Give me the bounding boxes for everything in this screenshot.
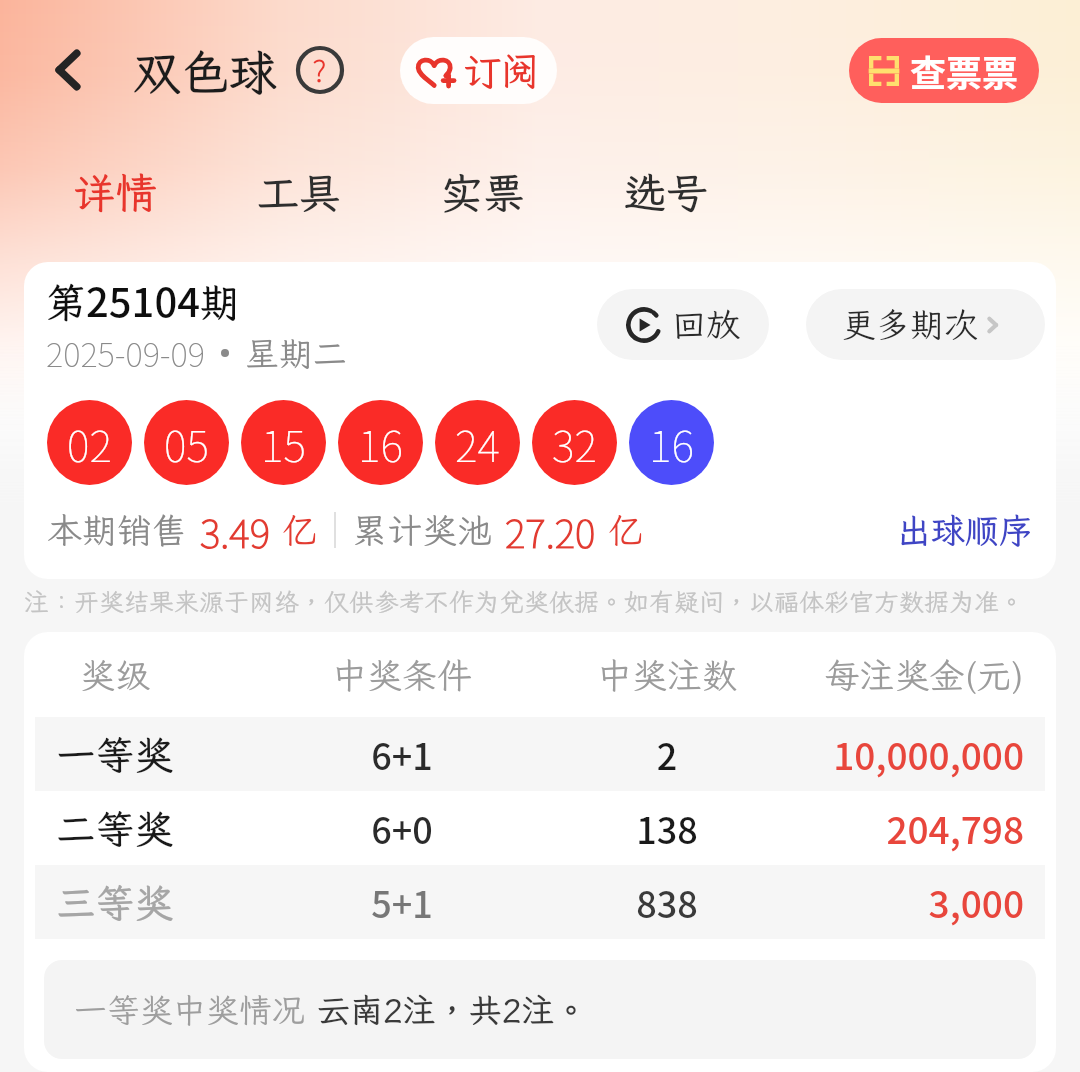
- staticText: 每注奖金(元): [824, 652, 1024, 698]
- staticText: 工具: [257, 165, 342, 220]
- button[interactable]: 订阅: [400, 37, 557, 104]
- staticText: 云南2注，共2注。: [317, 988, 588, 1031]
- button[interactable]: 工具: [239, 148, 359, 236]
- staticText: 更多期次: [842, 302, 978, 347]
- button[interactable]: 查票票: [849, 38, 1039, 103]
- staticText: 5+1: [262, 876, 542, 928]
- staticText: ?: [313, 47, 327, 90]
- staticText: 24: [455, 412, 500, 474]
- staticText: 204,798: [886, 801, 1024, 855]
- staticText: 10,000,000: [833, 727, 1024, 781]
- button[interactable]: 一等奖中奖情况: [44, 960, 1036, 1059]
- staticText: 双色球: [133, 40, 278, 103]
- staticText: 本期销售: [47, 507, 200, 553]
- button[interactable]: 三等奖: [24, 865, 1056, 939]
- staticText: 2025-09-09: [46, 329, 205, 377]
- staticText: 16: [649, 412, 694, 474]
- staticText: 实票: [441, 165, 526, 220]
- staticText: 05: [164, 412, 209, 474]
- button[interactable]: 选号: [606, 148, 726, 236]
- staticText: 订阅: [463, 46, 540, 96]
- staticText: 星期二: [245, 331, 347, 376]
- staticText: 累计奖池: [352, 507, 505, 553]
- button[interactable]: 二等奖: [24, 791, 1056, 865]
- staticText: 亿: [270, 507, 318, 553]
- staticText: 3.49: [200, 503, 270, 557]
- staticText: 二等奖: [24, 803, 255, 854]
- staticText: 三等奖: [24, 877, 255, 928]
- staticText: 选号: [624, 165, 709, 220]
- staticText: 注：开奖结果来源于网络，仅供参考不作为兑奖依据。如有疑问，以福体彩官方数据为准。: [24, 585, 1025, 618]
- staticText: 一等奖: [24, 729, 255, 780]
- button[interactable]: 一等奖: [24, 717, 1056, 791]
- staticText: 138: [527, 802, 807, 854]
- staticText: 第: [46, 276, 86, 329]
- staticText: 亿: [596, 507, 644, 553]
- staticText: 详情: [73, 165, 158, 220]
- staticText: 出球顺序: [897, 508, 1033, 553]
- staticText: 期: [200, 276, 240, 329]
- staticText: 3,000: [928, 875, 1024, 929]
- staticText: 838: [527, 876, 807, 928]
- staticText: 回放: [672, 302, 740, 347]
- staticText: 奖级: [24, 652, 255, 698]
- staticText: 15: [261, 412, 306, 474]
- staticText: 中奖条件: [262, 652, 542, 698]
- staticText: 6+1: [262, 728, 542, 780]
- staticText: 查票票: [910, 45, 1019, 97]
- staticText: 27.20: [505, 503, 596, 557]
- staticText: 02: [67, 412, 112, 474]
- staticText: 中奖注数: [527, 652, 807, 698]
- button[interactable]: Help: [294, 44, 346, 96]
- staticText: 25104: [86, 271, 200, 329]
- staticText: 2: [527, 728, 807, 780]
- button[interactable]: 出球顺序: [897, 508, 1033, 553]
- staticText: 一等奖中奖情况: [74, 988, 317, 1031]
- button[interactable]: 回放: [597, 289, 769, 360]
- button[interactable]: 详情: [55, 148, 175, 236]
- button[interactable]: 实票: [423, 148, 543, 236]
- staticText: 32: [552, 412, 597, 474]
- staticText: 16: [358, 412, 403, 474]
- staticText: 6+0: [262, 802, 542, 854]
- button[interactable]: 更多期次: [806, 289, 1045, 360]
- button[interactable]: Back: [36, 38, 100, 102]
